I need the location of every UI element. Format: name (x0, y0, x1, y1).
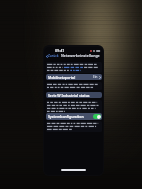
staticText: 09:41 (55, 48, 65, 53)
staticText: Systemkonfiguration (48, 114, 84, 119)
staticText: Serie W Industrial status (48, 93, 90, 98)
button[interactable]: Mobilnetzportal (46, 74, 102, 80)
staticText: Ein (93, 75, 98, 79)
button[interactable]: Systemkonfiguration (46, 113, 102, 120)
staticText: Zurück (48, 54, 59, 58)
button[interactable]: Serie W Industrial status (46, 92, 102, 98)
staticText: Mobilnetzportal (48, 75, 76, 80)
button[interactable]: Systemkonfiguration toggle (93, 114, 101, 119)
button[interactable]: Back (45, 54, 60, 58)
staticText: Netzwerkeinstellungen (61, 53, 101, 58)
